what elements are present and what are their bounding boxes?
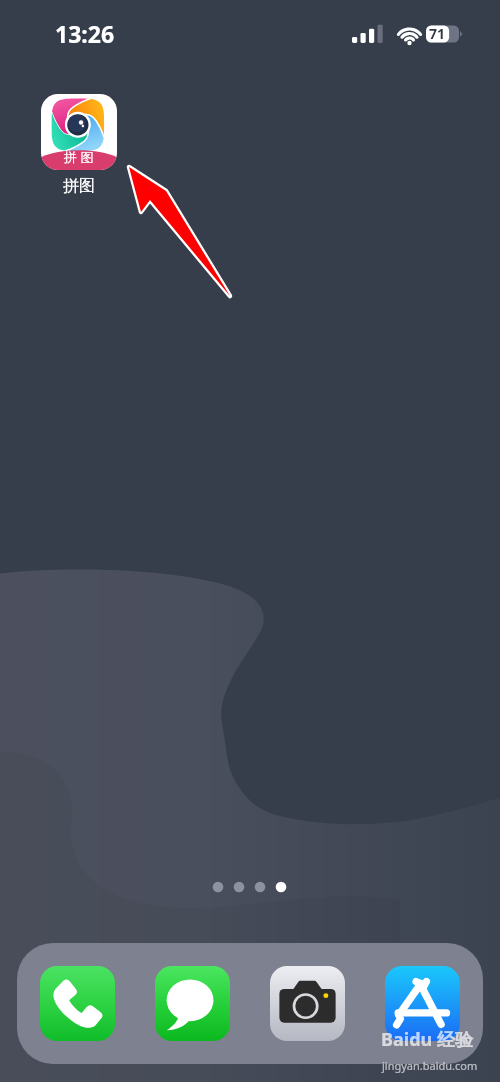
staticText: 拼图 [63, 176, 95, 196]
button[interactable]: Camera [270, 966, 345, 1041]
other: 拼图 [41, 94, 117, 170]
button[interactable]: Messages [155, 966, 230, 1041]
button[interactable]: Phone [40, 966, 115, 1041]
staticText: 71 [429, 24, 446, 43]
staticText: 拼 图 [64, 148, 94, 166]
staticText: Baidu 经验 [381, 1027, 473, 1052]
button[interactable]: 拼图 [40, 94, 118, 196]
staticText: jingyan.baidu.com [382, 1058, 478, 1073]
staticText: 13:26 [55, 18, 115, 49]
button[interactable]: App Store [385, 966, 460, 1041]
